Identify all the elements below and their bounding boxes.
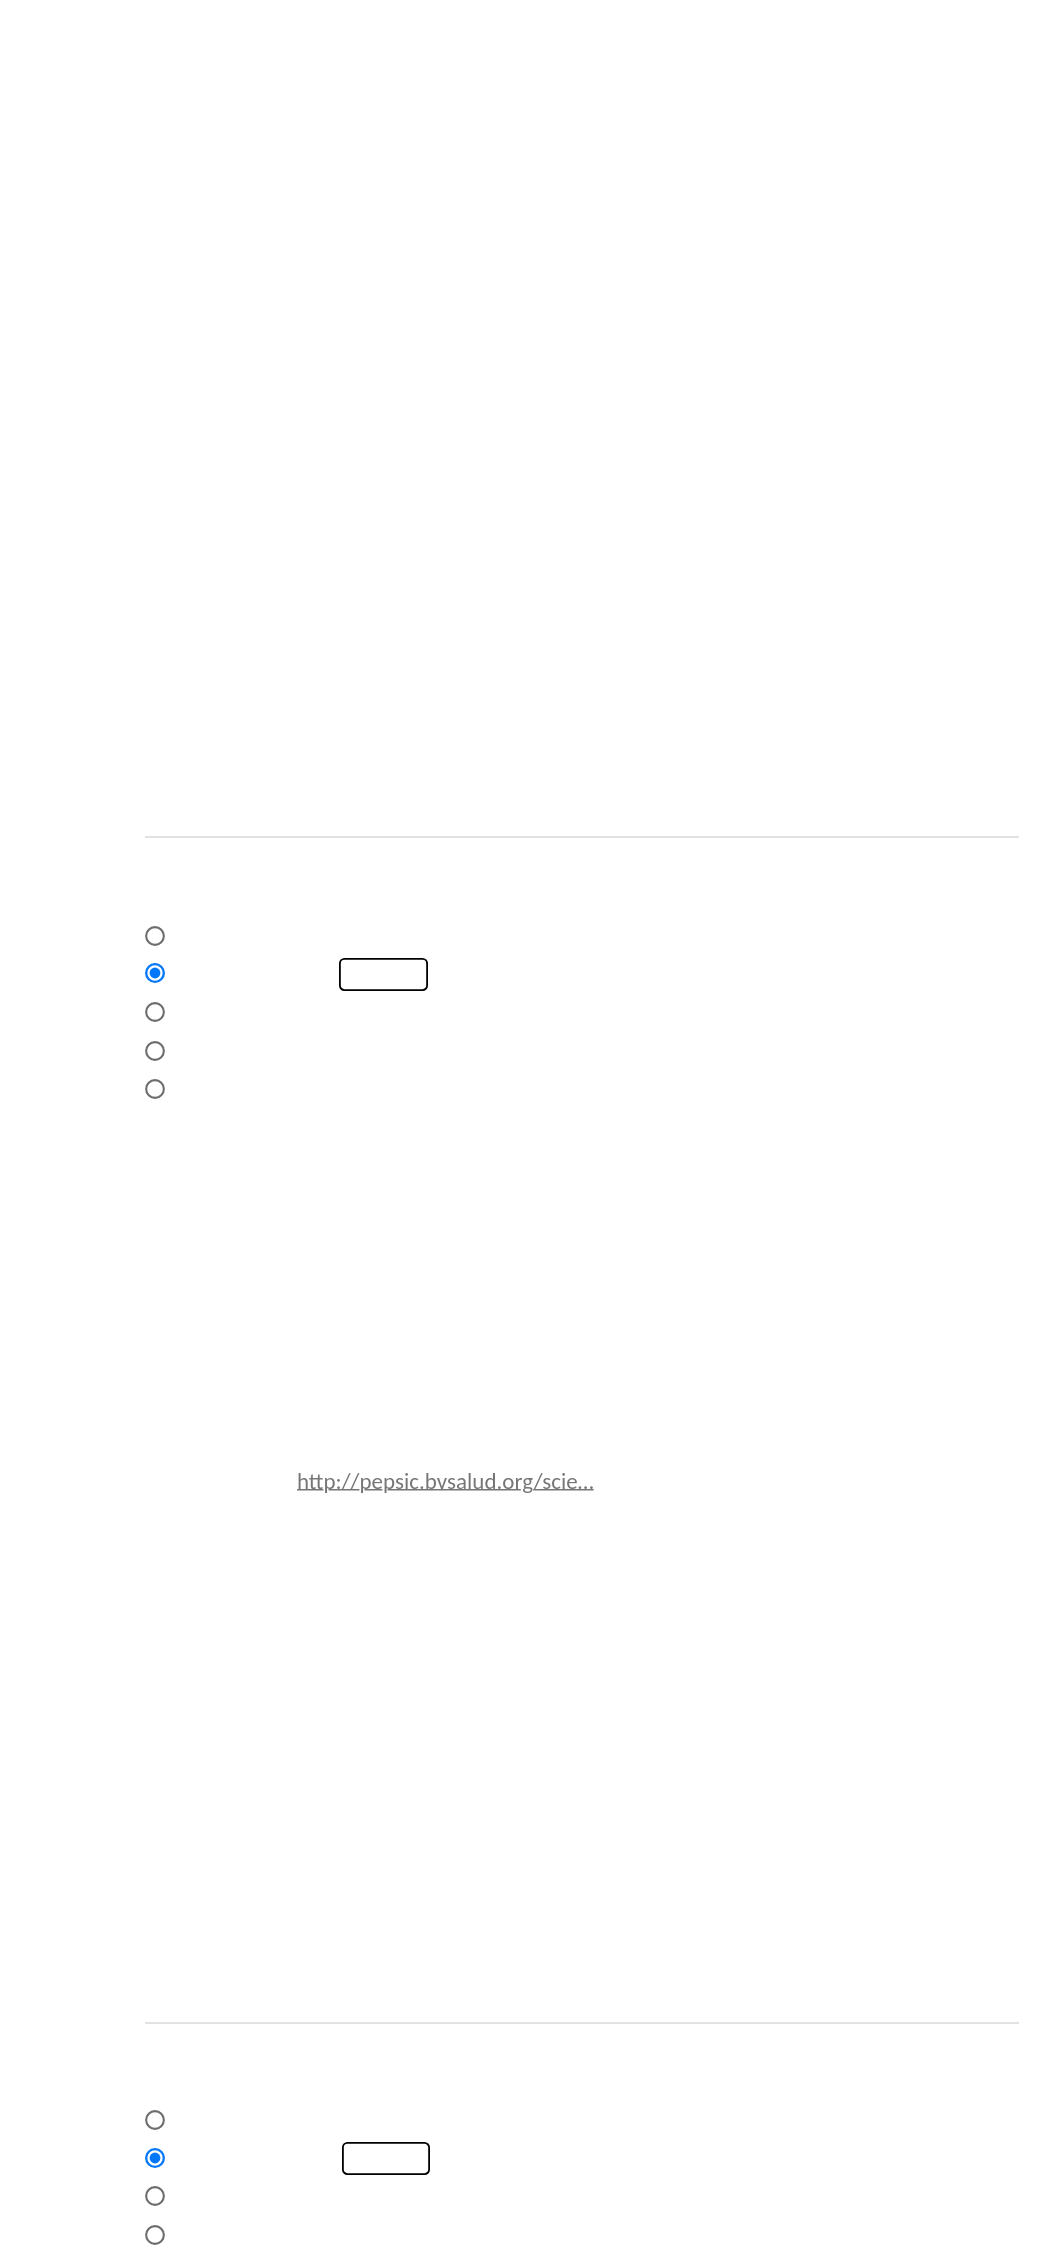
button[interactable]: Unselected radio option (140, 1036, 170, 1066)
button[interactable]: Unselected radio option (140, 2105, 170, 2135)
button[interactable]: Select control (342, 2142, 430, 2175)
button[interactable]: Select control (339, 958, 428, 991)
staticText: http://pepsic.bvsalud.org/scie… (297, 1467, 594, 1495)
button[interactable]: Unselected radio option (140, 921, 170, 951)
button[interactable]: Unselected radio option (140, 1074, 170, 1104)
button[interactable]: Unselected radio option (140, 997, 170, 1027)
button[interactable]: Selected radio option (140, 2143, 170, 2173)
button[interactable]: Unselected radio option (140, 2220, 170, 2250)
button[interactable]: http://pepsic.bvsalud.org/scie… (297, 1467, 594, 1495)
button[interactable]: Unselected radio option (140, 2181, 170, 2211)
button[interactable]: Selected radio option (140, 958, 170, 988)
